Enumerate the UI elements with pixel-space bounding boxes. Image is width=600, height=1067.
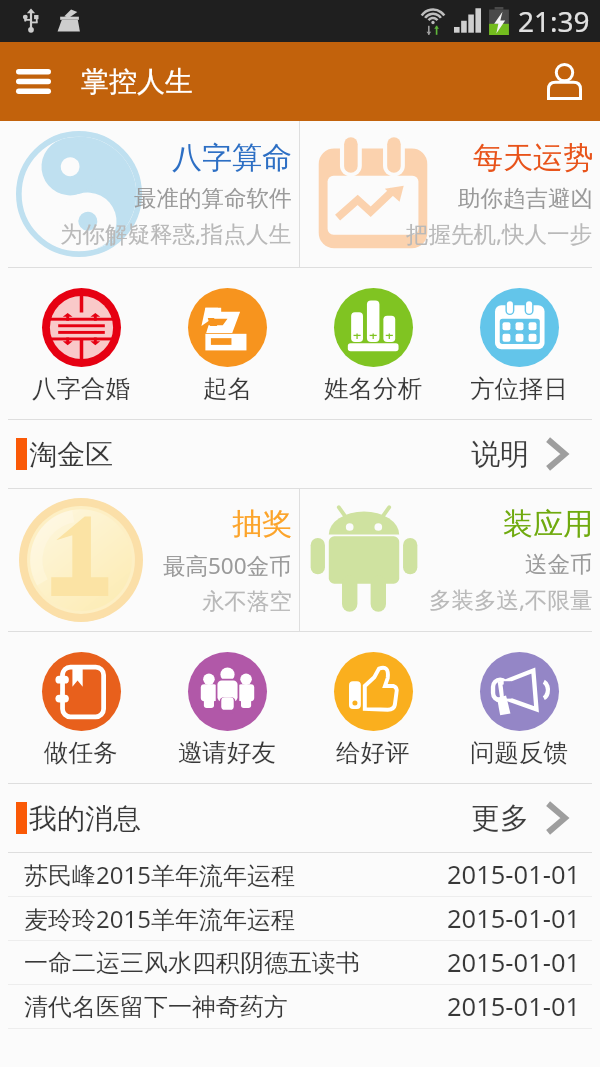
- staticText: 八字算命: [172, 139, 292, 177]
- staticText: 问题反馈: [470, 737, 568, 768]
- staticText: 苏民峰2015羊年流年运程: [24, 858, 295, 891]
- button[interactable]: 方位择日: [446, 283, 592, 404]
- button[interactable]: 一命二运三风水四积阴德五读书: [0, 941, 600, 984]
- staticText: 助你趋吉避凶: [458, 184, 593, 212]
- staticText: 送金币: [525, 550, 593, 578]
- staticText: 抽奖: [232, 505, 292, 543]
- staticText: 把握先机,快人一步: [406, 218, 593, 249]
- staticText: 多装多送,不限量: [429, 584, 593, 615]
- staticText: 邀请好友: [178, 737, 276, 768]
- staticText: 八字合婚: [32, 373, 130, 404]
- button[interactable]: 八字合婚: [8, 283, 154, 404]
- staticText: 最高500金币: [163, 550, 292, 581]
- button[interactable]: 邀请好友: [154, 647, 300, 768]
- staticText: 2015-01-01: [447, 901, 581, 936]
- staticText: 起名: [203, 373, 252, 404]
- staticText: 麦玲玲2015羊年流年运程: [24, 902, 295, 935]
- staticText: 21:39: [518, 2, 590, 40]
- staticText: 装应用: [503, 505, 593, 543]
- staticText: 最准的算命软件: [134, 184, 292, 212]
- button[interactable]: 问题反馈: [446, 647, 592, 768]
- staticText: 做任务: [44, 737, 118, 768]
- button[interactable]: 每天运势: [300, 121, 600, 267]
- staticText: 一命二运三风水四积阴德五读书: [24, 948, 360, 978]
- staticText: 方位择日: [470, 373, 568, 404]
- button[interactable]: 姓名分析: [300, 283, 446, 404]
- staticText: 给好评: [336, 737, 410, 768]
- staticText: 永不落空: [202, 587, 292, 615]
- staticText: 说明: [471, 436, 529, 473]
- staticText: 2015-01-01: [447, 857, 581, 892]
- staticText: 更多: [471, 800, 529, 837]
- button[interactable]: 说明: [453, 420, 600, 488]
- button[interactable]: 抽奖: [0, 489, 299, 631]
- button[interactable]: 做任务: [8, 647, 154, 768]
- staticText: 清代名医留下一神奇药方: [24, 992, 288, 1022]
- button[interactable]: 装应用: [300, 489, 600, 631]
- button[interactable]: 麦玲玲2015羊年流年运程: [0, 897, 600, 940]
- button[interactable]: 清代名医留下一神奇药方: [0, 985, 600, 1028]
- staticText: 每天运势: [473, 139, 593, 177]
- button[interactable]: Profile: [528, 42, 600, 121]
- button[interactable]: 给好评: [300, 647, 446, 768]
- staticText: 掌控人生: [81, 64, 193, 99]
- staticText: 姓名分析: [324, 373, 422, 404]
- staticText: 淘金区: [29, 437, 113, 472]
- staticText: 为你解疑释惑,指点人生: [60, 218, 292, 249]
- staticText: 我的消息: [29, 801, 141, 836]
- button[interactable]: 更多: [453, 784, 600, 852]
- button[interactable]: 八字算命: [0, 121, 299, 267]
- button[interactable]: 苏民峰2015羊年流年运程: [0, 853, 600, 896]
- button[interactable]: 起名: [154, 283, 300, 404]
- staticText: 2015-01-01: [447, 945, 581, 980]
- button[interactable]: Menu: [0, 42, 66, 121]
- staticText: 2015-01-01: [447, 989, 581, 1024]
